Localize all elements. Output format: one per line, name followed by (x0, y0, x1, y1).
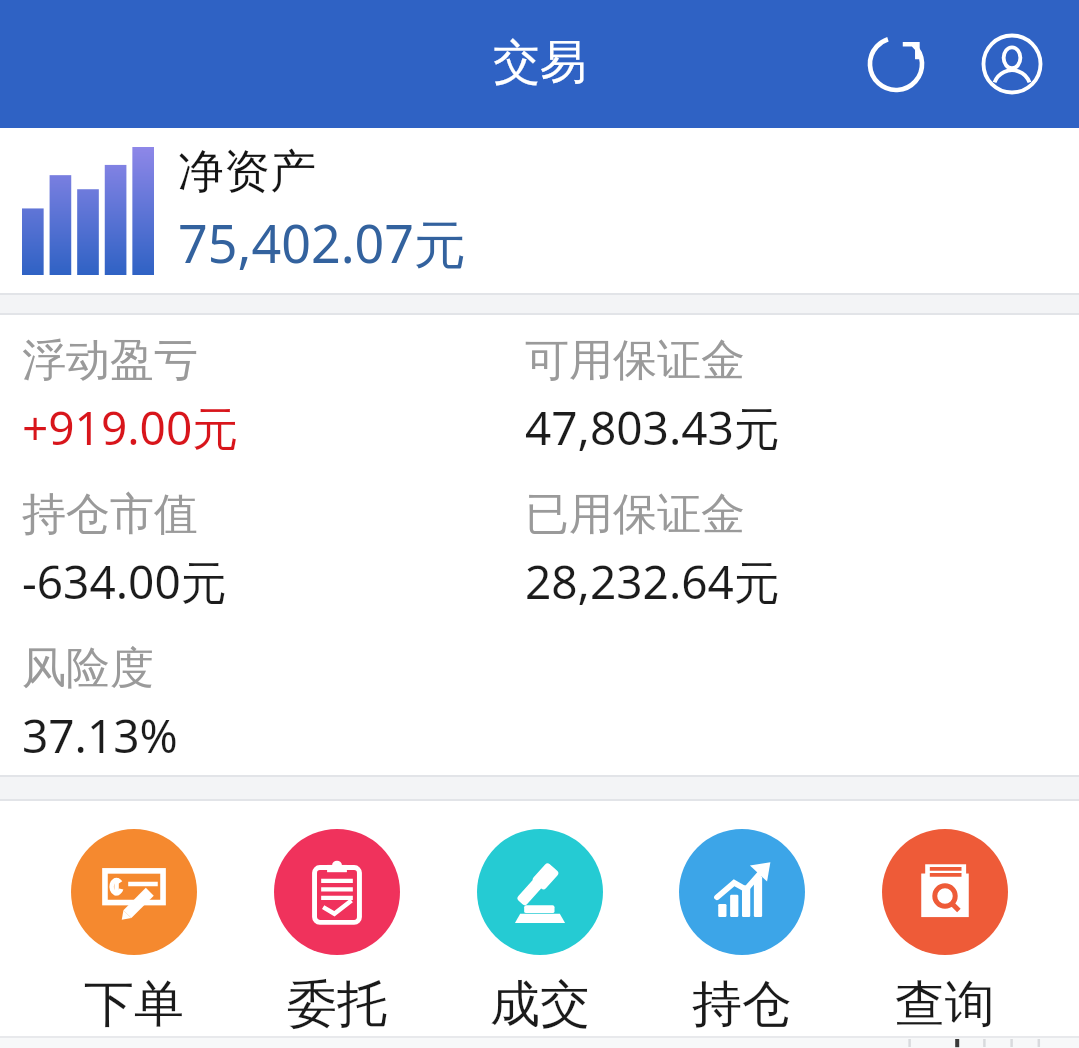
button[interactable]: 持仓市值 (22, 487, 525, 613)
staticText: 持仓 (692, 973, 792, 1036)
staticText: 47,803.43元 (525, 396, 780, 459)
staticText: 风险度 (22, 641, 154, 696)
staticText: 委托 (287, 973, 387, 1036)
button[interactable]: 查询 (876, 829, 1014, 1036)
button[interactable]: 风险度 (22, 641, 550, 767)
staticText: 成交 (490, 973, 590, 1036)
button[interactable]: 浮动盈亏 (22, 333, 525, 459)
staticText: 交易 (493, 33, 587, 92)
staticText: 查询 (895, 973, 995, 1036)
button[interactable]: 可用保证金 (525, 333, 1079, 459)
staticText: 已用保证金 (525, 487, 745, 542)
staticText: 28,232.64元 (525, 550, 780, 613)
button[interactable]: Account (975, 27, 1049, 101)
button[interactable]: 委托 (268, 829, 406, 1036)
staticText: 37.13% (22, 704, 178, 767)
button[interactable]: 成交 (471, 829, 609, 1036)
button[interactable]: 持仓 (673, 829, 811, 1036)
button[interactable]: 下单 (65, 829, 203, 1036)
staticText: 可用保证金 (525, 333, 745, 388)
staticText: 持仓市值 (22, 487, 198, 542)
staticText: 75,402.07元 (178, 207, 467, 278)
staticText: +919.00元 (22, 396, 239, 459)
staticText: 下单 (84, 973, 184, 1036)
staticText: 浮动盈亏 (22, 333, 198, 388)
button[interactable]: 已用保证金 (525, 487, 1079, 613)
staticText: -634.00元 (22, 550, 227, 613)
staticText: 净资产 (178, 143, 316, 201)
button[interactable]: 净资产 (0, 128, 1079, 293)
button[interactable]: Refresh (859, 27, 933, 101)
